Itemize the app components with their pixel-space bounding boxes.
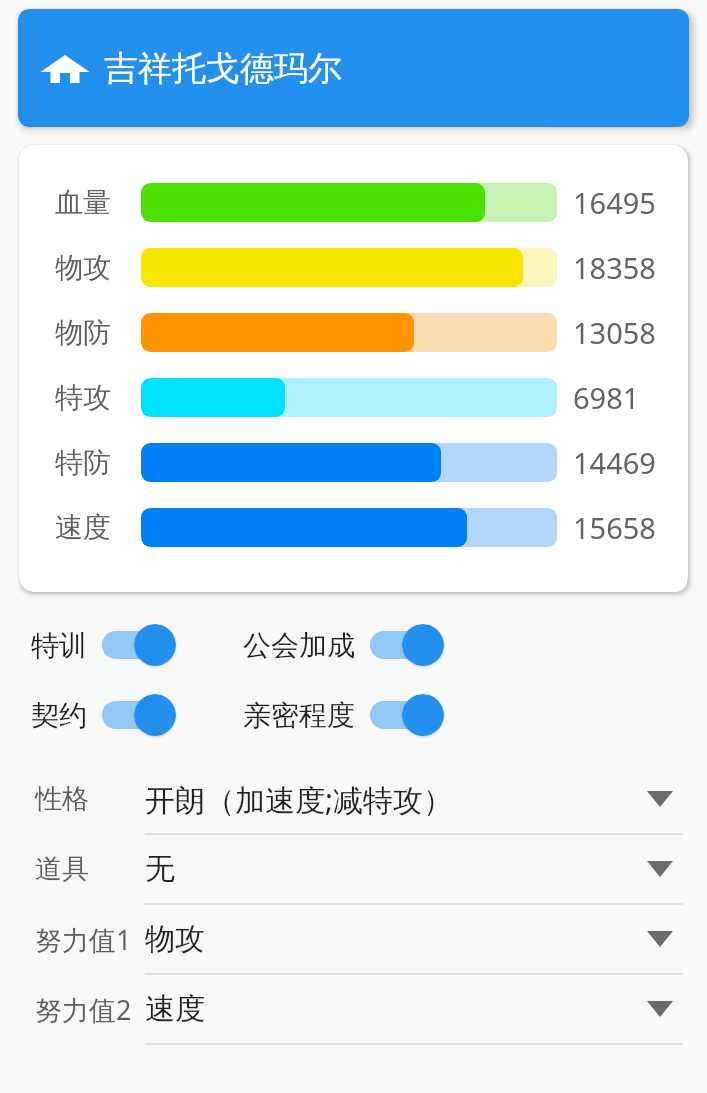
staticText: 契约	[31, 698, 87, 733]
staticText: 6981	[573, 378, 640, 417]
staticText: 亲密程度	[243, 698, 355, 733]
staticText: 血量	[55, 185, 111, 220]
staticText: 特防	[55, 445, 111, 480]
staticText: 物防	[55, 315, 111, 350]
button[interactable]: 物防	[19, 300, 688, 365]
button[interactable]: 血量	[19, 170, 688, 235]
staticText: 开朗（加速度;减特攻）	[145, 779, 454, 820]
staticText: 无	[145, 850, 175, 888]
staticText: 15658	[573, 508, 656, 547]
staticText: 18358	[573, 248, 656, 287]
staticText: 性格	[35, 782, 89, 816]
staticText: 16495	[573, 183, 656, 222]
staticText: 努力值1	[35, 921, 132, 958]
staticText: 13058	[573, 313, 656, 352]
button[interactable]: 特训	[31, 624, 176, 666]
staticText: 公会加成	[243, 628, 355, 663]
staticText: 道具	[35, 852, 89, 886]
staticText: 物攻	[55, 250, 111, 285]
button[interactable]: 特防	[19, 430, 688, 495]
button[interactable]: 公会加成	[243, 624, 444, 666]
staticText: 吉祥托戈德玛尔	[104, 47, 342, 90]
staticText: 14469	[573, 443, 656, 482]
button[interactable]: 物攻	[19, 235, 688, 300]
button[interactable]: 特攻	[19, 365, 688, 430]
button[interactable]: 速度	[19, 495, 688, 560]
staticText: 物攻	[145, 920, 205, 958]
button[interactable]: 契约	[31, 694, 176, 736]
button[interactable]: 努力值1	[0, 905, 707, 975]
button[interactable]: 亲密程度	[243, 694, 444, 736]
button[interactable]: 努力值2	[0, 975, 707, 1045]
staticText: 速度	[145, 990, 205, 1028]
button[interactable]: Home	[18, 9, 689, 127]
staticText: 特训	[31, 628, 87, 663]
staticText: 速度	[55, 510, 111, 545]
staticText: 特攻	[55, 380, 111, 415]
button[interactable]: 性格	[0, 765, 707, 835]
staticText: 努力值2	[35, 991, 132, 1028]
button[interactable]: Home	[40, 43, 90, 93]
button[interactable]: 道具	[0, 835, 707, 905]
